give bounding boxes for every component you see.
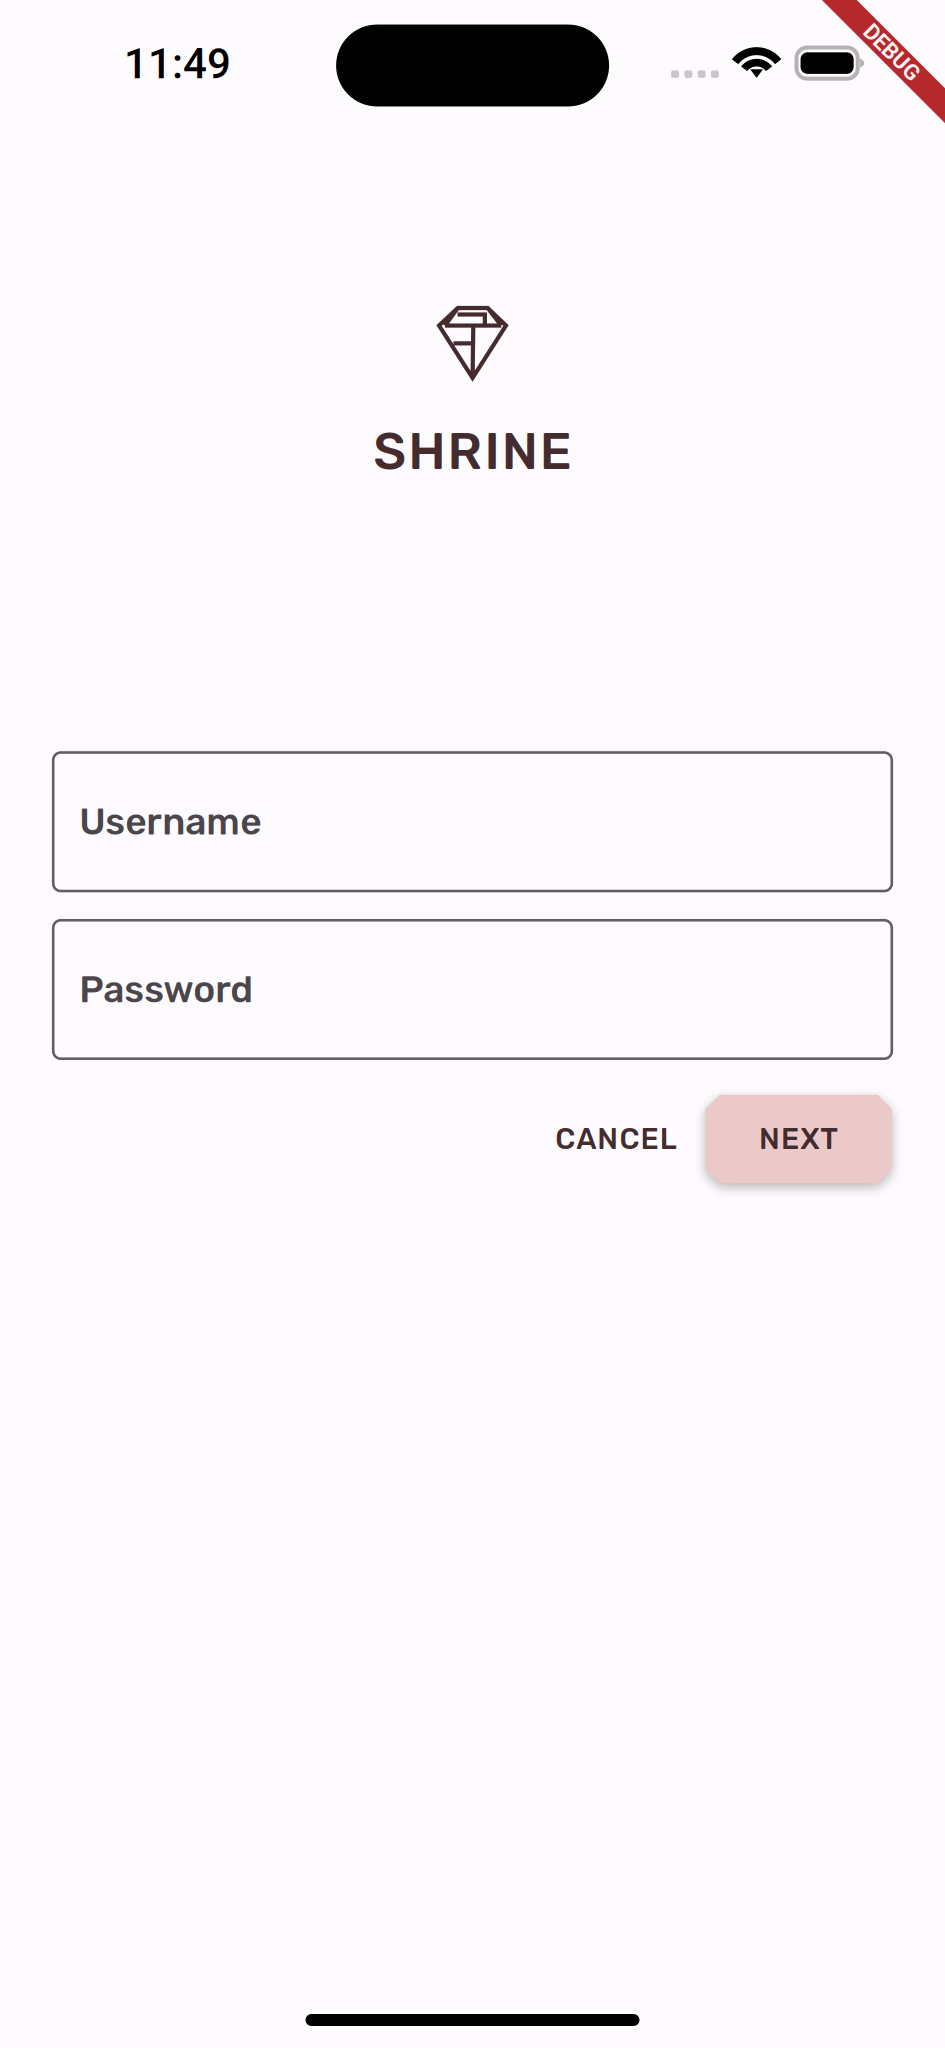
button[interactable]: CANCEL: [526, 1095, 705, 1183]
staticText: SHRINE: [373, 421, 572, 482]
staticText: NEXT: [759, 1122, 838, 1156]
button[interactable]: Username: [53, 752, 892, 891]
button[interactable]: NEXT: [705, 1095, 892, 1183]
staticText: Password: [79, 967, 253, 1011]
button[interactable]: Password: [53, 920, 892, 1059]
staticText: CANCEL: [555, 1122, 677, 1156]
staticText: Username: [79, 800, 261, 844]
staticText: 11:49: [124, 39, 231, 89]
staticText: DEBUG: [853, 48, 923, 74]
